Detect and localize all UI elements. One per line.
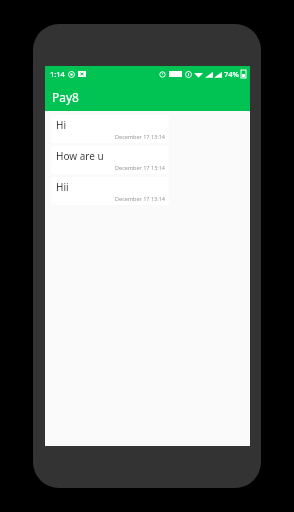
staticText: Hii [56, 180, 69, 194]
staticText: December 17 13:14 [56, 164, 165, 171]
button[interactable]: Hi [51, 115, 169, 143]
staticText: 1:14 [50, 69, 65, 79]
staticText: December 17 13:14 [56, 195, 165, 202]
staticText: 74% [224, 69, 239, 79]
staticText: Hi [56, 118, 66, 132]
button[interactable]: Hii [51, 177, 169, 205]
staticText: Pay8 [52, 89, 79, 105]
staticText: How are u [56, 149, 104, 163]
button[interactable]: How are u [51, 146, 169, 174]
staticText: December 17 13:14 [56, 133, 165, 140]
button[interactable]: Pay8 [45, 82, 250, 111]
